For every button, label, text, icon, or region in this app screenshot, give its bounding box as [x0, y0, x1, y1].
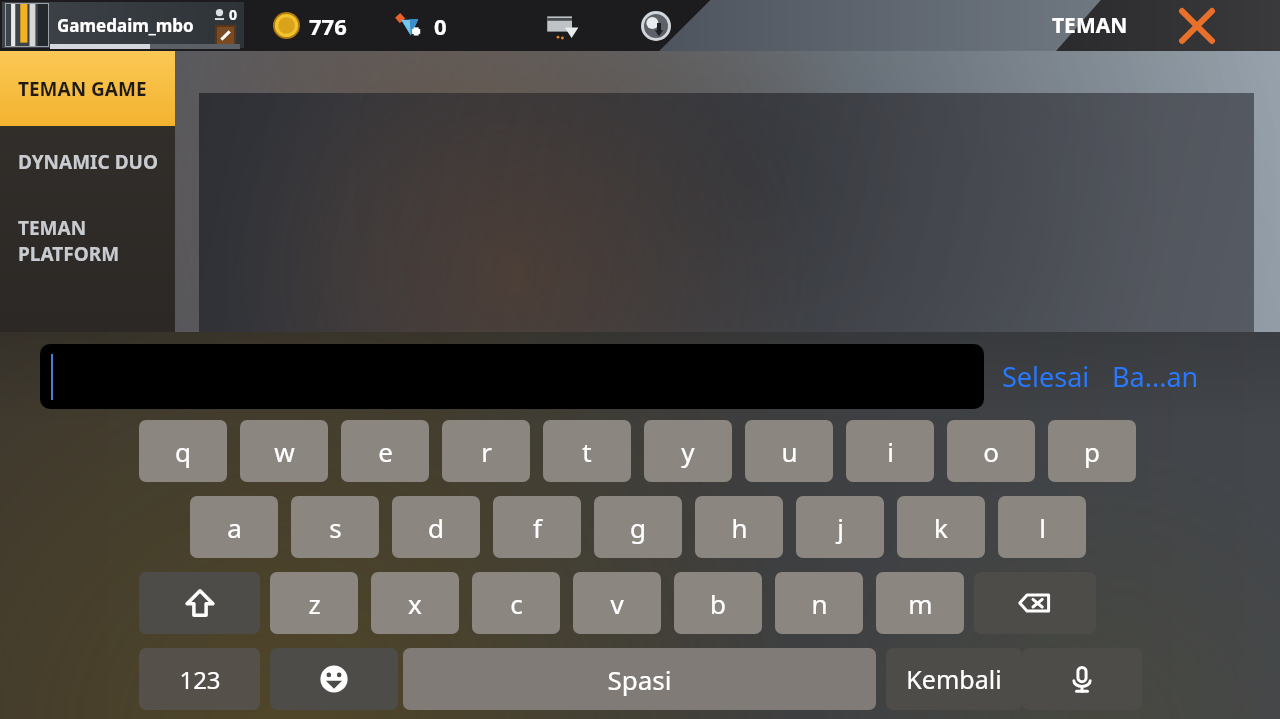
- staticText: TEMAN GAME: [18, 76, 147, 102]
- button[interactable]: h: [695, 496, 783, 558]
- button[interactable]: o: [947, 420, 1035, 482]
- button[interactable]: x: [371, 572, 459, 634]
- staticText: j: [837, 510, 844, 545]
- staticText: i: [887, 434, 894, 469]
- button[interactable]: k: [897, 496, 985, 558]
- staticText: Kembali: [906, 662, 1002, 696]
- button[interactable]: i: [846, 420, 934, 482]
- button[interactable]: d: [392, 496, 480, 558]
- button[interactable]: Shift: [139, 572, 260, 634]
- button[interactable]: 123: [139, 648, 260, 710]
- button[interactable]: DYNAMIC DUO: [0, 126, 175, 198]
- staticText: l: [1039, 510, 1046, 545]
- button[interactable]: TEMAN GAME: [0, 51, 175, 126]
- button[interactable]: 776: [273, 0, 347, 51]
- staticText: 776: [309, 11, 347, 41]
- staticText: z: [308, 586, 321, 621]
- button[interactable]: f: [493, 496, 581, 558]
- button[interactable]: g: [594, 496, 682, 558]
- staticText: x: [408, 586, 422, 621]
- button[interactable]: Emoji: [270, 648, 398, 710]
- staticText: b: [710, 586, 726, 621]
- button[interactable]: y: [644, 420, 732, 482]
- staticText: m: [908, 586, 933, 621]
- staticText: p: [1084, 434, 1100, 469]
- staticText: n: [811, 586, 828, 621]
- button[interactable]: s: [291, 496, 379, 558]
- staticText: y: [681, 434, 695, 469]
- staticText: Ba...an: [1112, 358, 1199, 395]
- staticText: s: [329, 510, 342, 545]
- staticText: 0: [229, 5, 238, 24]
- button[interactable]: w: [240, 420, 328, 482]
- staticText: a: [227, 510, 242, 545]
- staticText: DYNAMIC DUO: [18, 149, 158, 175]
- button[interactable]: v: [573, 572, 661, 634]
- staticText: TEMAN: [1052, 11, 1128, 40]
- staticText: h: [731, 510, 748, 545]
- staticText: q: [175, 434, 191, 469]
- staticText: 0: [434, 11, 447, 41]
- button[interactable]: q: [139, 420, 227, 482]
- staticText: c: [510, 586, 523, 621]
- button[interactable]: 0: [391, 0, 447, 51]
- staticText: w: [274, 434, 295, 469]
- button[interactable]: Top up: [535, 0, 593, 51]
- staticText: k: [934, 510, 948, 545]
- button[interactable]: Close: [1156, 0, 1238, 51]
- button[interactable]: j: [796, 496, 884, 558]
- staticText: d: [428, 510, 444, 545]
- button[interactable]: Spasi: [403, 648, 876, 710]
- button[interactable]: m: [876, 572, 964, 634]
- staticText: Spasi: [607, 662, 672, 697]
- button[interactable]: [40, 344, 984, 409]
- staticText: f: [533, 510, 542, 545]
- staticText: e: [378, 434, 393, 469]
- button[interactable]: b: [674, 572, 762, 634]
- button[interactable]: t: [543, 420, 631, 482]
- staticText: t: [582, 434, 592, 469]
- staticText: Gamedaim_mbo: [57, 14, 194, 37]
- button[interactable]: Kembali: [886, 648, 1022, 710]
- button[interactable]: Gamedaim_mbo: [2, 2, 244, 48]
- staticText: TEMAN: [18, 215, 87, 241]
- button[interactable]: c: [472, 572, 560, 634]
- button[interactable]: Ba...an: [1112, 358, 1199, 395]
- button[interactable]: TEMAN: [0, 198, 175, 284]
- button[interactable]: TEMAN: [1035, 0, 1145, 51]
- button[interactable]: Voice input: [1022, 648, 1142, 710]
- button[interactable]: u: [745, 420, 833, 482]
- staticText: Selesai: [1002, 358, 1090, 395]
- staticText: r: [481, 434, 492, 469]
- button[interactable]: l: [998, 496, 1086, 558]
- staticText: v: [610, 586, 624, 621]
- button[interactable]: z: [270, 572, 358, 634]
- button[interactable]: n: [775, 572, 863, 634]
- button[interactable]: a: [190, 496, 278, 558]
- button[interactable]: Backspace: [974, 572, 1096, 634]
- button[interactable]: Selesai: [1002, 358, 1090, 395]
- staticText: 123: [179, 663, 221, 696]
- button[interactable]: Download: [630, 0, 682, 51]
- staticText: o: [983, 434, 999, 469]
- staticText: u: [781, 434, 798, 469]
- staticText: PLATFORM: [18, 241, 120, 267]
- button[interactable]: e: [341, 420, 429, 482]
- button[interactable]: p: [1048, 420, 1136, 482]
- staticText: g: [630, 510, 646, 545]
- button[interactable]: r: [442, 420, 530, 482]
